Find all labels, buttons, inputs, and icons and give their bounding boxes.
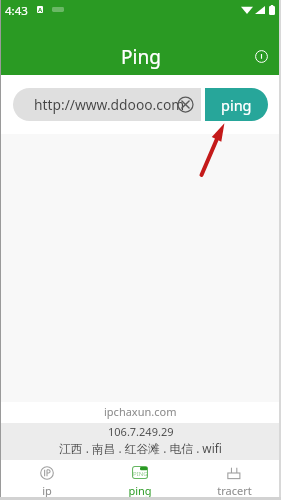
staticText: 4:43 [5, 3, 28, 19]
staticText: PING [133, 470, 148, 478]
button[interactable]: Info [249, 44, 273, 68]
staticText: 江西 . 南昌 . 红谷滩 . 电信 . wifi [59, 440, 222, 456]
staticText: tracert [217, 483, 252, 498]
staticText: Ping [121, 44, 161, 70]
staticText: ping [128, 483, 152, 498]
button[interactable]: Clear text [177, 96, 194, 113]
staticText: ip [42, 483, 52, 498]
staticText: ping [221, 95, 252, 115]
button[interactable]: PING [93, 460, 187, 498]
button[interactable]: tracert [187, 460, 281, 498]
button[interactable]: ping [205, 88, 268, 121]
staticText: http://www.ddooo.com [34, 95, 185, 114]
button[interactable]: ip [0, 460, 93, 498]
staticText: A [38, 6, 43, 13]
staticText: ipchaxun.com [104, 404, 177, 419]
staticText: 106.7.249.29 [108, 424, 174, 439]
button[interactable]: http://www.ddooo.com [13, 88, 201, 121]
